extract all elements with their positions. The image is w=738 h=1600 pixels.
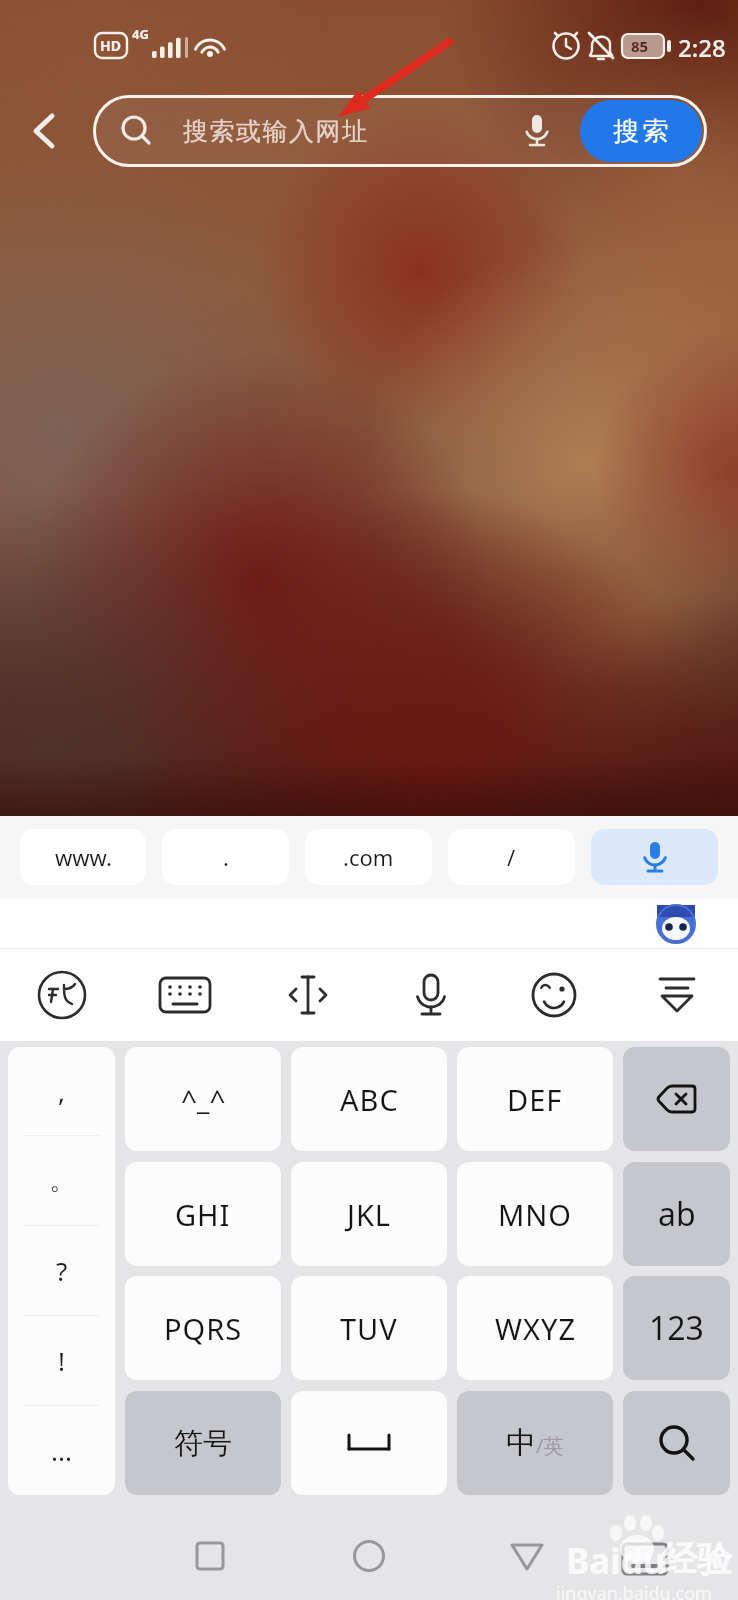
- button[interactable]: TUV: [291, 1276, 447, 1380]
- button[interactable]: 。: [8, 1136, 115, 1225]
- staticText: ABC: [340, 1080, 399, 1119]
- button[interactable]: [369, 949, 492, 1041]
- staticText: 85: [631, 36, 649, 56]
- button[interactable]: ...: [8, 1406, 115, 1495]
- staticText: ab: [658, 1192, 696, 1236]
- staticText: GHI: [175, 1195, 231, 1234]
- button[interactable]: [623, 1047, 730, 1151]
- staticText: www.: [55, 842, 112, 872]
- button[interactable]: 搜索或输入网址: [93, 95, 707, 167]
- button[interactable]: [615, 949, 738, 1041]
- button[interactable]: DEF: [457, 1047, 613, 1151]
- button[interactable]: [123, 949, 246, 1041]
- button[interactable]: WXYZ: [457, 1276, 613, 1380]
- staticText: 搜索或输入网址: [183, 116, 369, 147]
- button[interactable]: /: [448, 829, 575, 885]
- button[interactable]: 123: [623, 1276, 730, 1380]
- staticText: 123: [649, 1306, 704, 1350]
- staticText: jingyan.baidu.com: [556, 1581, 712, 1600]
- button[interactable]: ab: [623, 1162, 730, 1266]
- button[interactable]: [0, 949, 123, 1041]
- staticText: MNO: [498, 1195, 572, 1234]
- button[interactable]: PQRS: [125, 1276, 281, 1380]
- button[interactable]: [26, 112, 64, 150]
- button[interactable]: ?: [8, 1226, 115, 1315]
- button[interactable]: ^_^: [125, 1047, 281, 1151]
- staticText: HD: [100, 36, 121, 55]
- button[interactable]: [623, 1391, 730, 1495]
- button[interactable]: [591, 829, 718, 885]
- staticText: ,: [58, 1074, 65, 1109]
- button[interactable]: [246, 949, 369, 1041]
- button[interactable]: [656, 904, 696, 944]
- staticText: WXYZ: [495, 1309, 576, 1348]
- staticText: TUV: [340, 1309, 398, 1348]
- staticText: 搜索: [612, 115, 670, 148]
- staticText: Baidu: [566, 1537, 666, 1585]
- button[interactable]: 符号: [125, 1391, 281, 1495]
- staticText: !: [58, 1343, 65, 1378]
- button[interactable]: www.: [20, 829, 146, 885]
- staticText: /: [507, 842, 516, 872]
- button[interactable]: JKL: [291, 1162, 447, 1266]
- staticText: JKL: [347, 1195, 392, 1234]
- button[interactable]: .com: [305, 829, 432, 885]
- button[interactable]: .: [162, 829, 289, 885]
- button[interactable]: 搜索: [580, 100, 702, 162]
- staticText: DEF: [507, 1080, 563, 1119]
- staticText: 2:28: [678, 31, 726, 64]
- staticText: 经验: [662, 1537, 732, 1581]
- staticText: PQRS: [164, 1309, 243, 1348]
- button[interactable]: [492, 949, 615, 1041]
- staticText: ^_^: [181, 1080, 226, 1118]
- button[interactable]: ABC: [291, 1047, 447, 1151]
- staticText: ...: [51, 1433, 72, 1468]
- staticText: 符号: [174, 1425, 232, 1462]
- button[interactable]: [291, 1391, 447, 1495]
- button[interactable]: GHI: [125, 1162, 281, 1266]
- staticText: ?: [56, 1253, 68, 1288]
- staticText: 中/英: [506, 1424, 564, 1462]
- staticText: .com: [343, 842, 394, 872]
- staticText: 。: [49, 1164, 75, 1197]
- staticText: 4G: [132, 25, 149, 43]
- button[interactable]: 中/英: [457, 1391, 613, 1495]
- staticText: .: [223, 842, 229, 872]
- button[interactable]: !: [8, 1316, 115, 1405]
- button[interactable]: MNO: [457, 1162, 613, 1266]
- button[interactable]: ,: [8, 1047, 115, 1135]
